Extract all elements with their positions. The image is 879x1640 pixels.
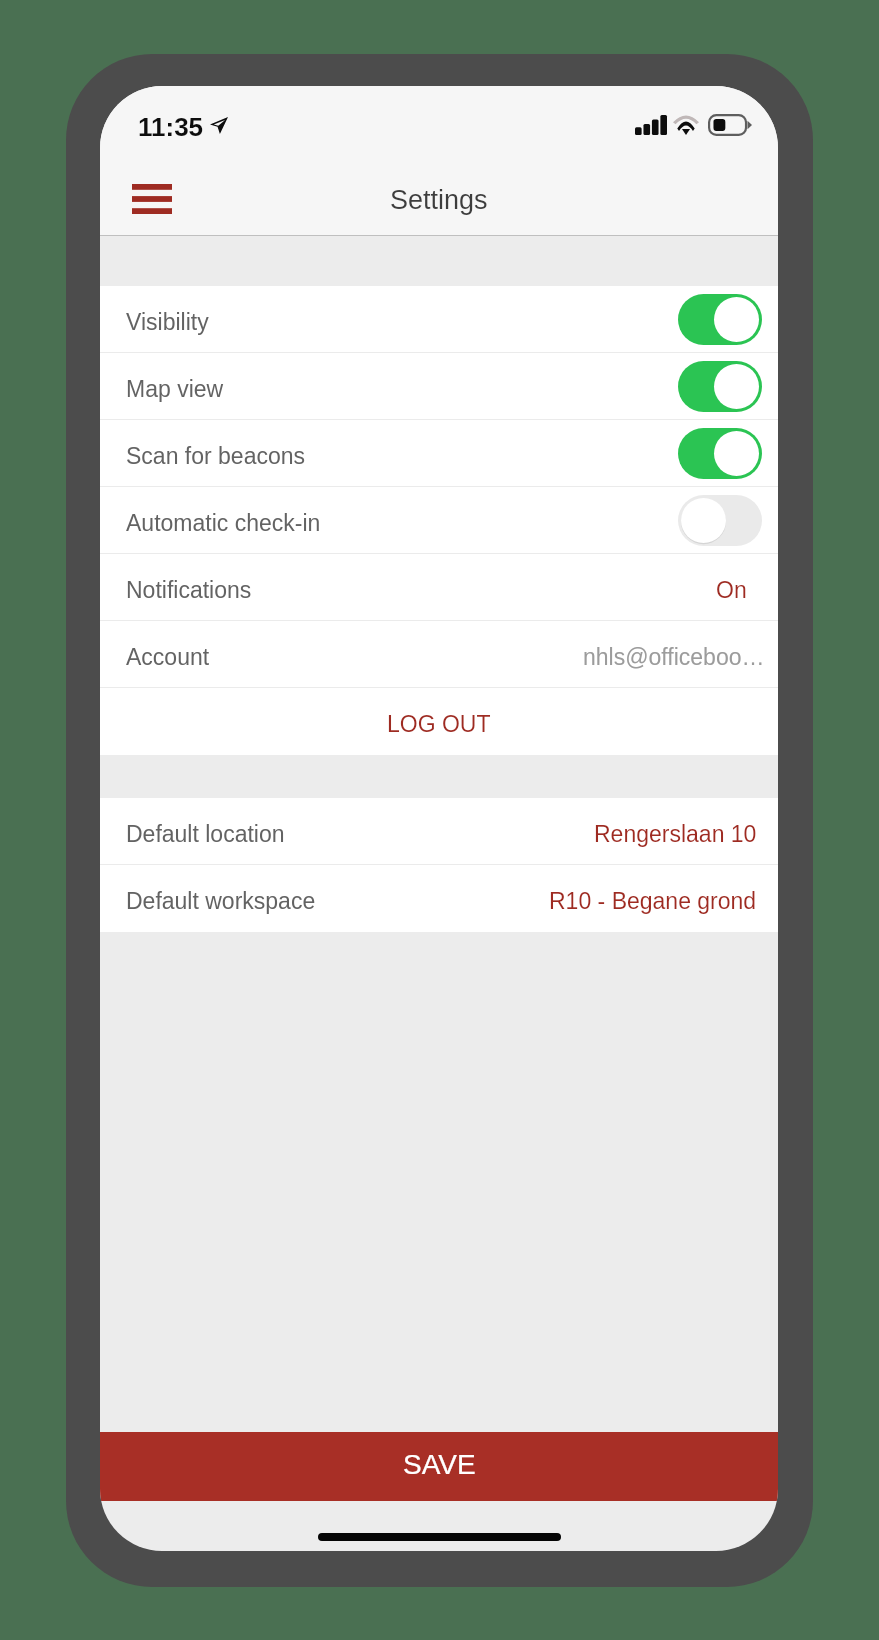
button[interactable]: Visibility xyxy=(100,286,778,353)
staticText: Notifications xyxy=(126,577,252,603)
staticText: LOG OUT xyxy=(387,711,491,737)
button[interactable]: Notifications xyxy=(100,554,778,621)
staticText: Settings xyxy=(390,185,488,215)
staticText: Map view xyxy=(126,376,224,402)
staticText: R10 - Begane grond xyxy=(549,888,757,914)
staticText: Rengerslaan 10 xyxy=(594,821,757,847)
button[interactable]: Account xyxy=(100,621,778,688)
staticText: Scan for beacons xyxy=(126,443,306,469)
button[interactable]: Automatic check-in xyxy=(100,487,778,554)
staticText: Automatic check-in xyxy=(126,510,321,536)
staticText: Default location xyxy=(126,821,285,847)
button[interactable]: Default location xyxy=(100,798,778,865)
button[interactable]: LOG OUT xyxy=(100,688,778,755)
staticText: Account xyxy=(126,644,210,670)
staticText: 11:35 xyxy=(138,112,204,141)
staticText: Visibility xyxy=(126,309,209,335)
button[interactable]: Default workspace xyxy=(100,865,778,932)
button[interactable]: Map view xyxy=(100,353,778,420)
button[interactable]: Toggle on xyxy=(678,294,762,345)
staticText: SAVE xyxy=(403,1449,476,1480)
staticText: On xyxy=(716,577,747,603)
button[interactable]: Toggle on xyxy=(678,428,762,479)
staticText: Default workspace xyxy=(126,888,316,914)
button[interactable]: Toggle off xyxy=(678,495,762,546)
button[interactable]: Scan for beacons xyxy=(100,420,778,487)
button[interactable]: Toggle on xyxy=(678,361,762,412)
button[interactable]: Open navigation menu xyxy=(112,163,192,235)
staticText: nhls@officeboo… xyxy=(583,644,765,670)
button[interactable]: SAVE xyxy=(100,1432,778,1501)
